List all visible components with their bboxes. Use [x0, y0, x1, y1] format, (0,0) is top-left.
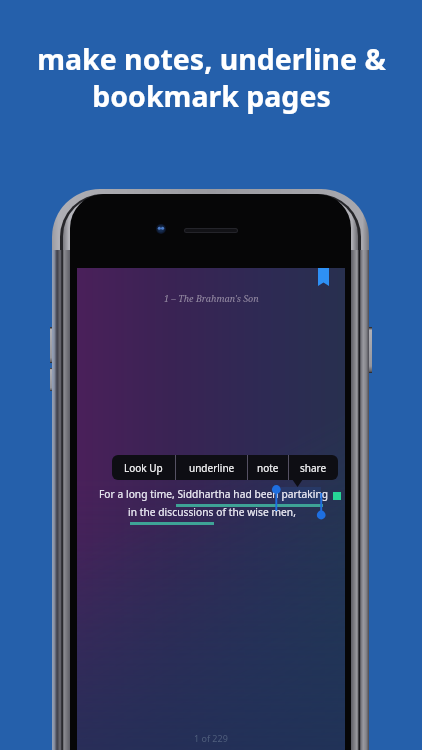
staticText: in the discussions of the wise men, [128, 505, 296, 519]
staticText: 1 – The Brahman's Son [164, 292, 259, 304]
staticText: 1 of 229 [194, 732, 228, 744]
button[interactable]: Look Up [112, 455, 175, 480]
staticText: underline [189, 461, 235, 475]
staticText: make notes, underline & bookmark pages [37, 40, 386, 115]
staticText: share [300, 461, 327, 475]
staticText: Look Up [124, 461, 163, 475]
button[interactable]: Bookmark [318, 268, 329, 286]
button[interactable]: underline [176, 455, 247, 480]
staticText: note [257, 461, 279, 475]
button[interactable]: share [289, 455, 338, 480]
button[interactable]: note [248, 455, 288, 480]
staticText: For a long time, Siddhartha had been par… [99, 487, 329, 501]
